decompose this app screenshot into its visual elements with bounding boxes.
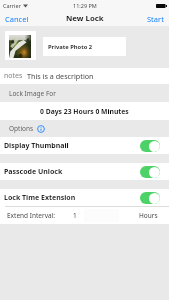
- button[interactable]: Display Thumbnail: [0, 137, 169, 154]
- button[interactable]: Private Photo 2: [43, 37, 126, 56]
- button[interactable]: Passcode Unlock: [0, 163, 169, 180]
- button[interactable]: Cancel: [0, 12, 34, 26]
- staticText: New Lock: [66, 13, 104, 24]
- staticText: Lock Time Extension: [4, 193, 76, 203]
- button[interactable]: 0 Days 23 Hours 0 Minutes: [0, 102, 169, 120]
- staticText: Display Thumbnail: [4, 141, 69, 151]
- button[interactable]: Start: [142, 12, 169, 26]
- staticText: 1: [73, 211, 77, 220]
- staticText: Start: [147, 14, 164, 24]
- button[interactable]: Toggle: [140, 166, 160, 178]
- staticText: Extend Interval:: [7, 211, 56, 220]
- staticText: 0 Days 23 Hours 0 Minutes: [40, 107, 129, 116]
- button[interactable]: Photo: [5, 31, 36, 60]
- button[interactable]: Toggle: [140, 192, 160, 204]
- staticText: 11:29 PM: [73, 2, 97, 9]
- button[interactable]: notes: [0, 68, 169, 84]
- staticText: Options: [9, 124, 34, 133]
- button[interactable]: Toggle: [140, 140, 160, 152]
- other: Information: [37, 125, 45, 133]
- staticText: Private Photo 2: [48, 43, 93, 51]
- button[interactable]: Extend Interval:: [0, 207, 169, 224]
- staticText: Lock Image For: [9, 89, 56, 98]
- button[interactable]: Lock Time Extension: [0, 189, 169, 206]
- staticText: This is a description: [27, 71, 94, 81]
- staticText: Hours: [139, 211, 158, 220]
- staticText: Cancel: [5, 14, 29, 24]
- staticText: Carrier: [3, 2, 21, 9]
- staticText: notes: [4, 71, 23, 81]
- staticText: Passcode Unlock: [4, 167, 63, 177]
